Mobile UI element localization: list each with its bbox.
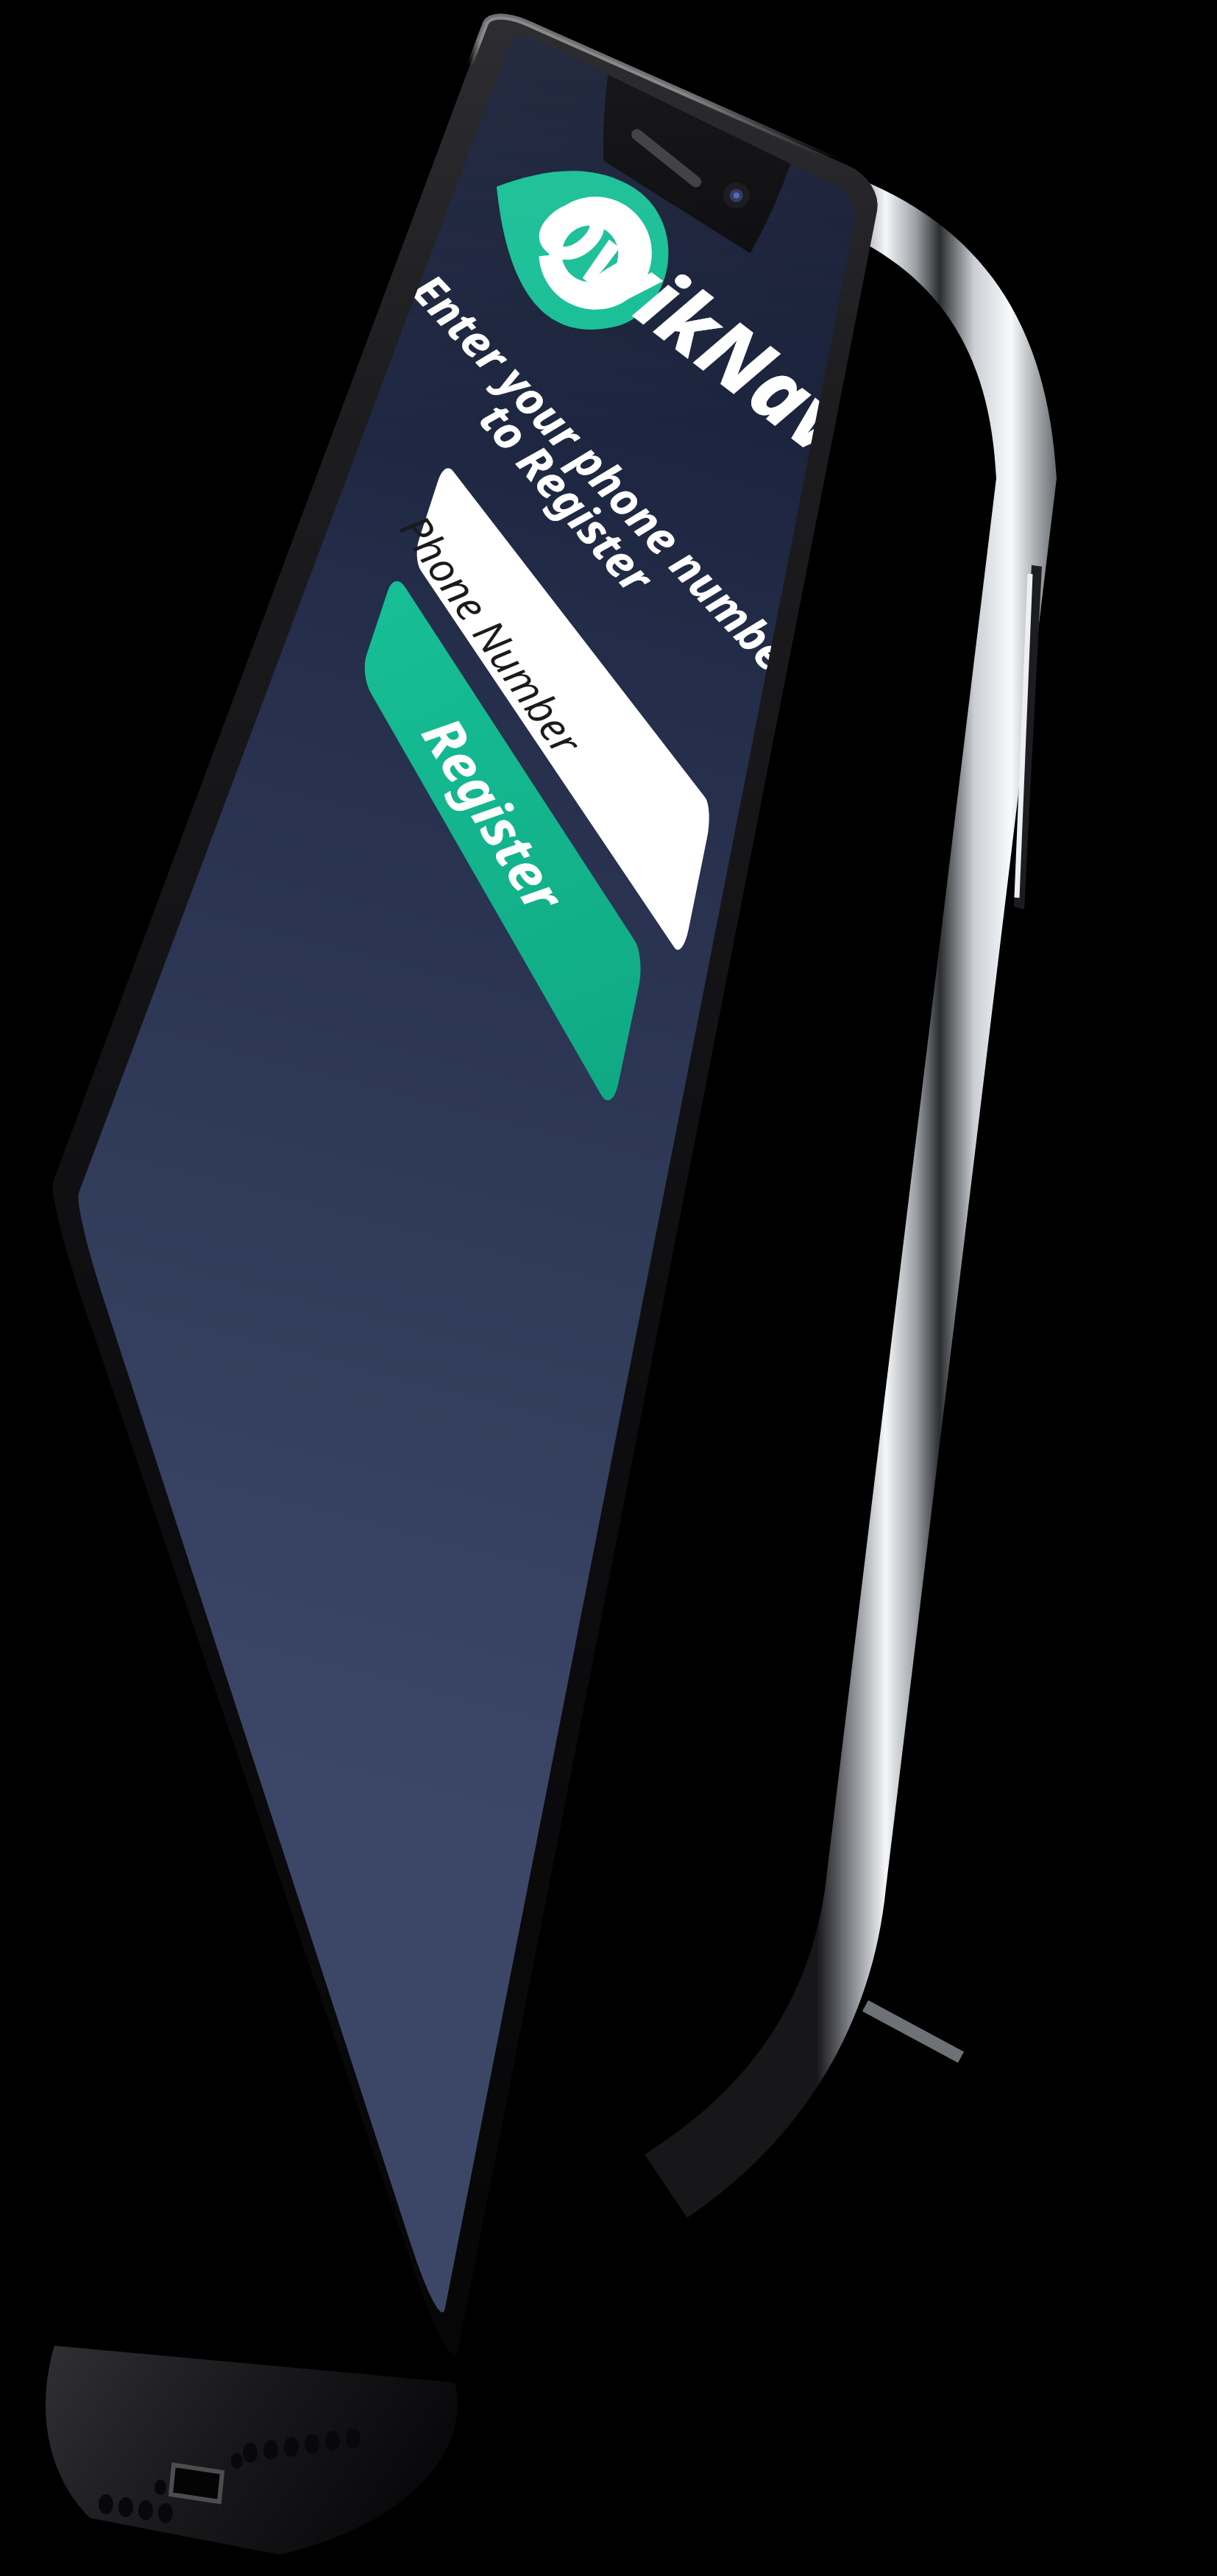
button[interactable]: QwikNav register screen bbox=[0, 0, 1217, 2576]
